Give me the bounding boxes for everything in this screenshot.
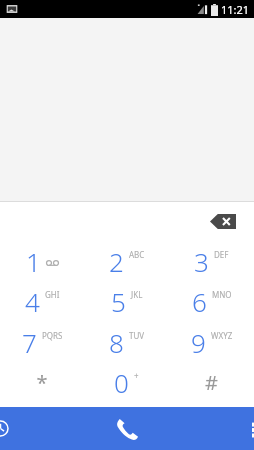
- staticText: 7: [22, 325, 37, 360]
- staticText: 0: [114, 365, 129, 400]
- button[interactable]: 0: [84, 363, 169, 401]
- staticText: 1: [26, 244, 41, 279]
- staticText: PQRS: [42, 330, 63, 341]
- button[interactable]: 7: [0, 323, 84, 361]
- staticText: GHI: [45, 289, 60, 300]
- button[interactable]: 3: [169, 242, 254, 280]
- button[interactable]: 6: [169, 282, 254, 320]
- staticText: 6: [192, 284, 207, 319]
- button[interactable]: More options: [169, 407, 254, 450]
- staticText: WXYZ: [211, 330, 233, 341]
- staticText: 5: [111, 284, 126, 319]
- button[interactable]: 9: [169, 323, 254, 361]
- button[interactable]: #: [169, 363, 254, 401]
- staticText: MNO: [212, 289, 232, 300]
- button[interactable]: 1: [0, 242, 84, 280]
- staticText: 9: [191, 325, 206, 360]
- staticText: 2: [109, 244, 124, 279]
- staticText: TUV: [129, 330, 145, 341]
- staticText: 11:21: [221, 2, 250, 17]
- staticText: #: [205, 369, 218, 396]
- staticText: 8: [109, 325, 124, 360]
- button[interactable]: 2: [84, 242, 169, 280]
- button[interactable]: Call history: [0, 407, 84, 450]
- staticText: DEF: [214, 249, 229, 260]
- button[interactable]: 8: [84, 323, 169, 361]
- button[interactable]: 4: [0, 282, 84, 320]
- staticText: 3: [194, 244, 209, 279]
- staticText: ABC: [129, 249, 145, 260]
- button[interactable]: *: [0, 363, 84, 401]
- button[interactable]: Backspace: [206, 210, 240, 232]
- button[interactable]: 5: [84, 282, 169, 320]
- staticText: +: [134, 370, 139, 381]
- staticText: *: [36, 369, 48, 396]
- staticText: 4: [25, 284, 40, 319]
- button[interactable]: Call: [84, 407, 169, 450]
- staticText: JKL: [131, 289, 143, 300]
